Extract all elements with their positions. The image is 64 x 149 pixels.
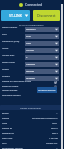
staticText: 1.00 MB [49, 137, 58, 140]
button[interactable]: Flash size [0, 136, 62, 141]
staticText: Serial number [2, 26, 26, 29]
button[interactable]: Port [0, 32, 62, 39]
staticText: Firmware upgrade [38, 89, 56, 92]
staticText: Reset mode [2, 61, 26, 64]
staticText: Device [2, 117, 10, 120]
staticText: 0 [26, 56, 28, 59]
other: Browse external loader [54, 85, 57, 88]
staticText: -- [56, 147, 58, 149]
button[interactable]: Shared [0, 74, 62, 81]
other: Debug in low power mode [54, 81, 57, 84]
staticText: Rev A [52, 132, 58, 135]
staticText: Mode [2, 47, 26, 50]
button[interactable]: Device ID [0, 126, 62, 131]
staticText: STM32F40x/STM32F41x [32, 117, 58, 120]
staticText: 066DFF51 [26, 28, 37, 31]
button[interactable]: Access port [0, 53, 62, 60]
button[interactable]: CPU [0, 141, 62, 146]
button[interactable]: Revision ID [0, 131, 62, 136]
button[interactable]: External loader [0, 85, 62, 90]
button[interactable]: Reset mode [0, 60, 62, 67]
staticText: Speed [2, 68, 26, 71]
staticText: 4000 [26, 42, 32, 45]
button[interactable]: Board [0, 111, 62, 116]
staticText: Target voltage [2, 89, 18, 92]
staticText: SWD [26, 35, 31, 38]
button[interactable]: Device [0, 116, 62, 121]
button[interactable]: Mode [0, 46, 62, 53]
button[interactable]: ST-LINK [1, 10, 30, 21]
staticText: External loader [2, 85, 19, 88]
staticText: MCU [52, 122, 58, 125]
staticText: Port [2, 33, 26, 36]
button[interactable]: Frequency (kHz) [0, 39, 62, 46]
staticText: ST-LINK configuration [19, 23, 44, 26]
staticText: Bootloader Version [2, 147, 23, 149]
staticText: Disconnect [37, 13, 56, 18]
staticText: CPU [2, 142, 7, 145]
staticText: Revision ID [2, 132, 14, 135]
staticText: 0x413 [51, 127, 58, 130]
staticText: Board [2, 112, 9, 115]
button[interactable]: Firmware upgrade [37, 87, 57, 93]
staticText: Normal [26, 49, 34, 52]
staticText: Device ID [2, 127, 13, 130]
staticText: Access port [2, 54, 26, 57]
button[interactable]: Debug in Low Power mode [0, 80, 62, 85]
staticText: Frequency (kHz) [2, 40, 26, 43]
button[interactable]: Serial number [0, 25, 62, 32]
staticText: -- [56, 112, 58, 115]
staticText: Shared [2, 75, 26, 78]
staticText: Software [26, 63, 36, 66]
staticText: Reliable [26, 70, 35, 73]
button[interactable]: Speed [0, 67, 62, 74]
staticText: Disabled [26, 77, 35, 80]
staticText: Flash size [2, 137, 13, 140]
staticText: Cortex-M4 [46, 142, 58, 145]
staticText: ST-LINK [9, 13, 23, 18]
button[interactable]: Bootloader Version [0, 146, 62, 149]
staticText: Firmware version [2, 94, 21, 97]
staticText: Target information [20, 106, 42, 109]
staticText: Connected [25, 2, 43, 7]
staticText: Debug in Low Power mode [2, 80, 31, 83]
button[interactable]: Type [0, 121, 62, 126]
button[interactable]: Disconnect [33, 10, 60, 21]
staticText: Type [2, 122, 8, 125]
